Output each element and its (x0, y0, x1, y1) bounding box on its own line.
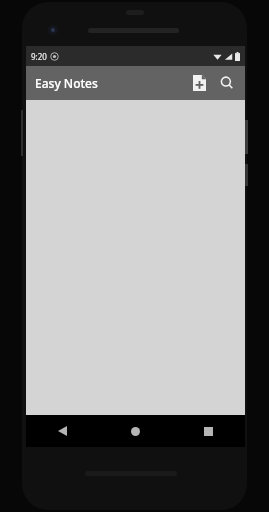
button[interactable]: Search (213, 69, 241, 97)
button[interactable]: Home (99, 415, 172, 447)
staticText: 9:20 (31, 51, 47, 62)
staticText: Easy Notes (35, 75, 98, 91)
button[interactable]: Back (26, 415, 99, 447)
button[interactable]: New note (185, 69, 213, 97)
button[interactable]: Recent apps (172, 415, 245, 447)
